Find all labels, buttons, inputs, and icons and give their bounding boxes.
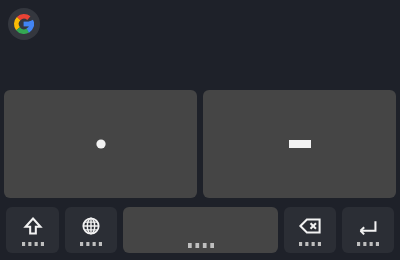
button[interactable]: Dash <box>203 90 396 198</box>
button[interactable]: Space <box>123 207 278 253</box>
button[interactable]: Period <box>4 90 197 198</box>
button[interactable]: Enter <box>342 207 394 253</box>
button[interactable]: Shift <box>6 207 59 253</box>
button[interactable]: Backspace <box>284 207 336 253</box>
button[interactable]: Language <box>65 207 117 253</box>
button[interactable]: Google Assistant <box>8 8 40 40</box>
